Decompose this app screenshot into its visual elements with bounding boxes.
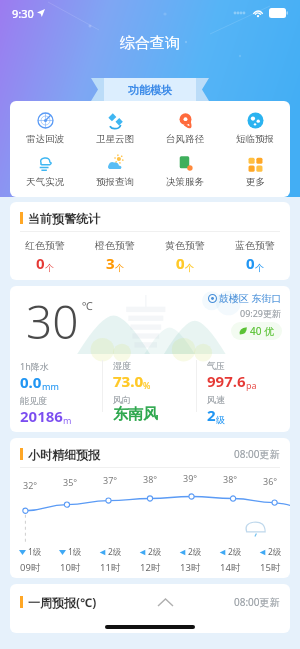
staticText: 个 — [115, 262, 124, 273]
staticText: 73.0 — [113, 371, 143, 391]
staticText: 38° — [143, 473, 158, 485]
button[interactable]: 2级 — [210, 546, 250, 558]
staticText: 蓝色预警 — [235, 239, 275, 252]
button[interactable]: 天气实况 — [10, 152, 80, 189]
button[interactable]: 红色预警 — [10, 239, 80, 273]
staticText: 功能模块 — [128, 83, 172, 97]
button[interactable]: 2级 — [130, 546, 170, 558]
staticText: 0 — [176, 253, 185, 273]
staticText: 2级 — [148, 546, 162, 558]
button[interactable]: 决策服务 — [150, 152, 220, 189]
staticText: 天气实况 — [26, 176, 64, 188]
staticText: 预报查询 — [96, 176, 134, 188]
staticText: 08:00更新 — [234, 595, 280, 609]
staticText: 当前预警统计 — [28, 211, 100, 226]
staticText: 9:30 — [12, 6, 34, 21]
button[interactable]: 2级 — [250, 546, 290, 558]
other: 卫星云图 — [107, 112, 124, 129]
other: 台风路径 — [177, 112, 194, 129]
button[interactable]: 橙色预警 — [80, 239, 150, 273]
staticText: 20186 — [20, 406, 63, 426]
staticText: 1级 — [28, 546, 42, 558]
staticText: 35° — [63, 476, 78, 488]
button[interactable]: 1级 — [10, 546, 50, 558]
staticText: 0.0 — [20, 372, 42, 392]
staticText: 红色预警 — [25, 239, 65, 252]
staticText: m — [63, 414, 72, 426]
staticText: 3 — [106, 253, 115, 273]
staticText: 决策服务 — [166, 176, 204, 188]
staticText: 鼓楼区 东街口 — [219, 291, 282, 305]
button[interactable]: 台风路径 — [150, 109, 220, 146]
button[interactable]: 卫星云图 — [80, 109, 150, 146]
staticText: ℃ — [82, 298, 93, 313]
staticText: 级 — [216, 414, 225, 425]
other: 短临预报 — [247, 112, 264, 129]
staticText: 09时 — [20, 561, 41, 574]
staticText: 14时 — [220, 561, 241, 574]
staticText: 更多 — [246, 176, 265, 188]
staticText: 30 — [26, 290, 79, 353]
other: 更多 — [247, 155, 264, 172]
staticText: 0 — [36, 253, 45, 273]
button[interactable]: 黄色预警 — [150, 239, 220, 273]
staticText: 40 优 — [250, 324, 275, 338]
staticText: 雷达回波 — [26, 133, 64, 145]
button[interactable]: 蓝色预警 — [220, 239, 290, 273]
button[interactable]: 短临预报 — [220, 109, 290, 146]
staticText: 黄色预警 — [165, 239, 205, 252]
staticText: mm — [42, 380, 59, 392]
staticText: 38° — [223, 473, 238, 485]
staticText: 风向 — [113, 394, 131, 405]
staticText: 2级 — [108, 546, 122, 558]
staticText: 32° — [23, 479, 38, 491]
staticText: 13时 — [180, 561, 201, 574]
staticText: 气压 — [207, 360, 225, 371]
staticText: 卫星云图 — [96, 133, 134, 145]
staticText: 39° — [183, 472, 198, 484]
staticText: 1h降水 — [20, 360, 49, 372]
staticText: % — [143, 379, 151, 391]
staticText: 09:29更新 — [240, 307, 282, 319]
staticText: 橙色预警 — [95, 239, 135, 252]
staticText: 12时 — [140, 561, 161, 574]
staticText: 能见度 — [20, 395, 47, 406]
staticText: 小时精细预报 — [28, 447, 100, 462]
staticText: 综合查询 — [0, 34, 300, 53]
staticText: 个 — [255, 262, 264, 273]
staticText: 短临预报 — [236, 133, 274, 145]
button[interactable]: 2级 — [90, 546, 130, 558]
staticText: 37° — [103, 474, 118, 486]
other: 预报查询 — [107, 155, 124, 172]
other: 决策服务 — [177, 155, 194, 172]
other: 天气实况 — [37, 155, 54, 172]
button[interactable]: 2级 — [170, 546, 210, 558]
staticText: pa — [246, 379, 257, 391]
staticText: 997.6 — [207, 371, 246, 391]
staticText: 2级 — [268, 546, 282, 558]
staticText: 1级 — [68, 546, 82, 558]
staticText: 东南风 — [113, 405, 158, 424]
staticText: 台风路径 — [166, 133, 204, 145]
staticText: 2级 — [228, 546, 242, 558]
button[interactable]: 更多 — [220, 152, 290, 189]
other: 雷达回波 — [37, 112, 54, 129]
staticText: 0 — [246, 253, 255, 273]
staticText: 个 — [185, 262, 194, 273]
staticText: 个 — [45, 262, 54, 273]
staticText: 08:00更新 — [234, 447, 280, 461]
staticText: 11时 — [100, 561, 121, 574]
staticText: 36° — [263, 475, 278, 487]
staticText: 2 — [207, 405, 216, 425]
staticText: 湿度 — [113, 360, 131, 371]
staticText: 一周预报(℃) — [28, 594, 97, 610]
button[interactable]: 1级 — [50, 546, 90, 558]
staticText: 风速 — [207, 394, 225, 405]
staticText: 2级 — [188, 546, 202, 558]
staticText: 10时 — [60, 561, 81, 574]
button[interactable]: 雷达回波 — [10, 109, 80, 146]
staticText: 15时 — [260, 561, 281, 574]
button[interactable]: 预报查询 — [80, 152, 150, 189]
